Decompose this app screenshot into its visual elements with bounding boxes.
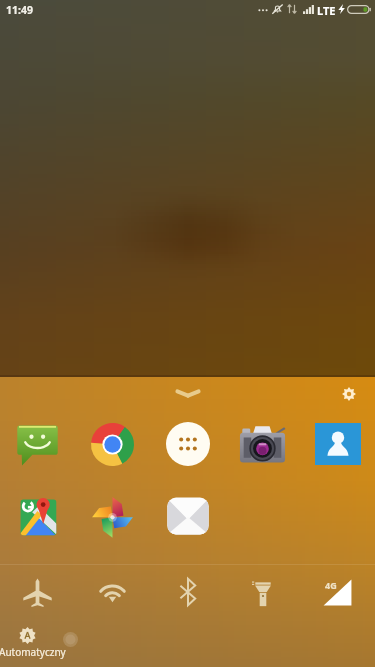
button[interactable]: Automatic brightness xyxy=(19,627,36,644)
staticText: 4G xyxy=(325,579,337,591)
button[interactable]: Flashlight xyxy=(225,566,300,618)
button[interactable]: Bluetooth xyxy=(150,566,225,618)
button[interactable]: Chrome xyxy=(75,417,150,471)
button[interactable]: Settings xyxy=(336,381,361,406)
button[interactable]: Airplane mode xyxy=(0,566,75,618)
button[interactable]: Photos xyxy=(75,489,150,543)
button[interactable]: Collapse panel xyxy=(167,382,208,404)
button[interactable]: Camera xyxy=(225,417,300,471)
button[interactable]: Mobile data xyxy=(300,566,375,618)
button[interactable]: Contacts xyxy=(300,417,375,471)
button[interactable]: All apps xyxy=(150,417,225,471)
button[interactable]: Messaging xyxy=(0,417,75,471)
staticText: 11:49 xyxy=(6,3,33,17)
staticText: Automatyczny xyxy=(0,645,66,659)
staticText: LTE xyxy=(317,3,336,18)
button[interactable]: Maps xyxy=(0,489,75,543)
button[interactable]: Wi-Fi xyxy=(75,566,150,618)
button[interactable]: Email xyxy=(150,489,225,543)
